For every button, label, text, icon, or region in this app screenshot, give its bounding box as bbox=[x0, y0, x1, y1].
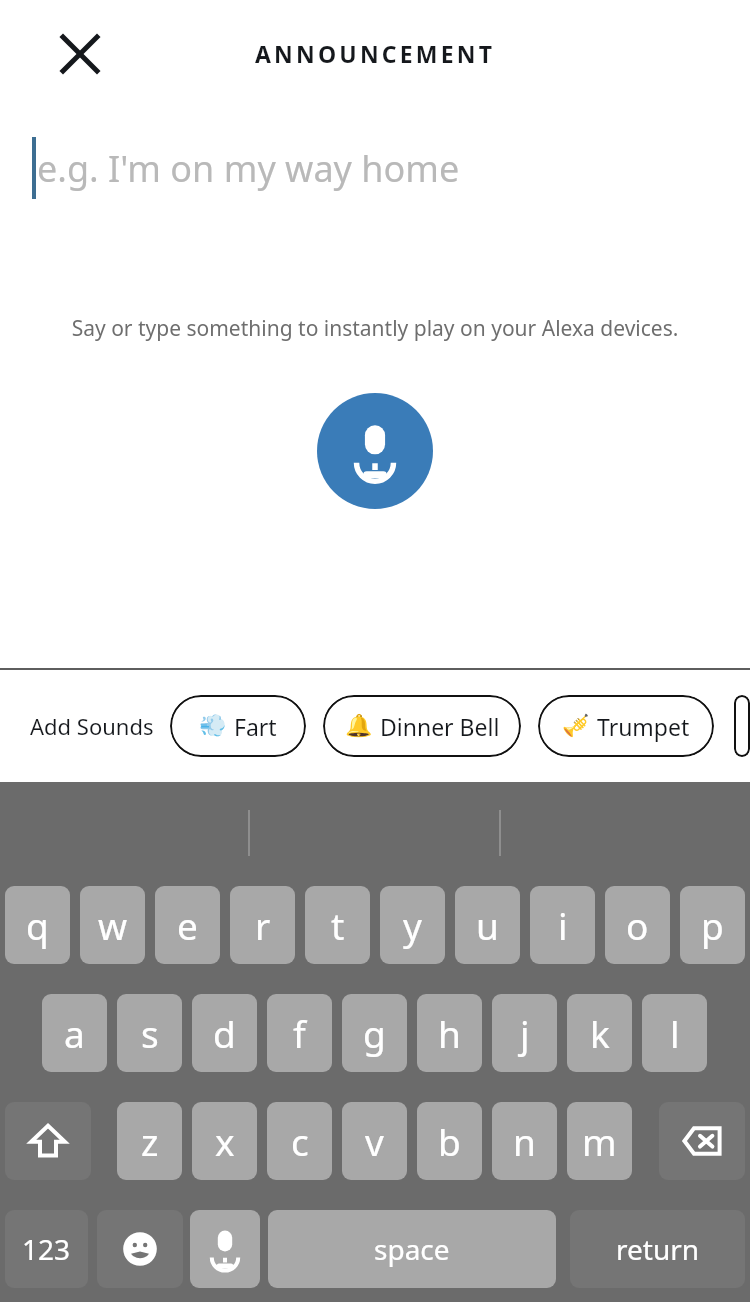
button[interactable]: 💨 bbox=[170, 695, 306, 757]
button[interactable]: r bbox=[230, 886, 295, 964]
staticText: 🎺 bbox=[562, 713, 590, 739]
button[interactable]: s bbox=[117, 994, 182, 1072]
button[interactable]: 🔔 bbox=[323, 695, 521, 757]
staticText: e.g. I'm on my way home bbox=[37, 144, 460, 193]
staticText: 💨 bbox=[199, 713, 227, 739]
button[interactable]: e bbox=[155, 886, 220, 964]
button[interactable]: g bbox=[342, 994, 407, 1072]
staticText: w bbox=[98, 900, 128, 950]
button[interactable]: o bbox=[605, 886, 670, 964]
button[interactable]: space bbox=[268, 1210, 556, 1288]
button[interactable]: b bbox=[417, 1102, 482, 1180]
button[interactable]: Record announcement bbox=[317, 393, 433, 509]
staticText: 🔔 bbox=[345, 713, 373, 739]
staticText: o bbox=[626, 900, 649, 950]
button[interactable]: u bbox=[455, 886, 520, 964]
staticText: t bbox=[331, 900, 345, 950]
button[interactable]: k bbox=[567, 994, 632, 1072]
button[interactable]: l bbox=[642, 994, 707, 1072]
staticText: d bbox=[213, 1008, 236, 1058]
staticText: q bbox=[26, 900, 49, 950]
button[interactable]: v bbox=[342, 1102, 407, 1180]
staticText: j bbox=[520, 1008, 530, 1058]
staticText: Dinner Bell bbox=[380, 711, 500, 742]
staticText: Trumpet bbox=[597, 711, 690, 742]
staticText: space bbox=[374, 1230, 450, 1268]
button[interactable]: n bbox=[492, 1102, 557, 1180]
staticText: p bbox=[701, 900, 724, 950]
button[interactable]: Emoji bbox=[97, 1210, 183, 1288]
button[interactable] bbox=[734, 695, 750, 757]
button[interactable]: x bbox=[192, 1102, 257, 1180]
button[interactable]: a bbox=[42, 994, 107, 1072]
button[interactable]: return bbox=[570, 1210, 745, 1288]
staticText: c bbox=[291, 1116, 309, 1166]
staticText: f bbox=[293, 1008, 306, 1058]
staticText: s bbox=[141, 1008, 159, 1058]
staticText: l bbox=[670, 1008, 680, 1058]
staticText: z bbox=[141, 1116, 159, 1166]
button[interactable]: f bbox=[267, 994, 332, 1072]
staticText: r bbox=[255, 900, 271, 950]
staticText: i bbox=[558, 900, 568, 950]
button[interactable]: Voice input bbox=[190, 1210, 260, 1288]
button[interactable]: c bbox=[267, 1102, 332, 1180]
staticText: g bbox=[363, 1008, 386, 1058]
button[interactable]: z bbox=[117, 1102, 182, 1180]
staticText: ANNOUNCEMENT bbox=[255, 38, 496, 69]
button[interactable]: Close bbox=[50, 24, 110, 84]
button[interactable]: t bbox=[305, 886, 370, 964]
staticText: k bbox=[590, 1008, 610, 1058]
button[interactable]: y bbox=[380, 886, 445, 964]
staticText: m bbox=[582, 1116, 617, 1166]
button[interactable]: Backspace bbox=[659, 1102, 745, 1180]
staticText: n bbox=[513, 1116, 536, 1166]
staticText: return bbox=[616, 1230, 700, 1268]
staticText: y bbox=[403, 900, 422, 950]
button[interactable]: Shift bbox=[5, 1102, 91, 1180]
button[interactable]: 123 bbox=[5, 1210, 88, 1288]
button[interactable]: j bbox=[492, 994, 557, 1072]
staticText: 123 bbox=[22, 1230, 71, 1268]
button[interactable]: 🎺 bbox=[538, 695, 714, 757]
button[interactable]: w bbox=[80, 886, 145, 964]
staticText: v bbox=[365, 1116, 384, 1166]
staticText: e bbox=[177, 900, 198, 950]
staticText: a bbox=[64, 1008, 85, 1058]
staticText: u bbox=[476, 900, 499, 950]
button[interactable]: h bbox=[417, 994, 482, 1072]
staticText: Say or type something to instantly play … bbox=[0, 314, 750, 343]
staticText: Add Sounds bbox=[30, 711, 154, 741]
staticText: Fart bbox=[234, 711, 277, 742]
button[interactable]: d bbox=[192, 994, 257, 1072]
staticText: x bbox=[215, 1116, 235, 1166]
button[interactable]: m bbox=[567, 1102, 632, 1180]
button[interactable]: i bbox=[530, 886, 595, 964]
staticText: h bbox=[438, 1008, 461, 1058]
button[interactable]: q bbox=[5, 886, 70, 964]
button[interactable]: p bbox=[680, 886, 745, 964]
staticText: b bbox=[438, 1116, 461, 1166]
